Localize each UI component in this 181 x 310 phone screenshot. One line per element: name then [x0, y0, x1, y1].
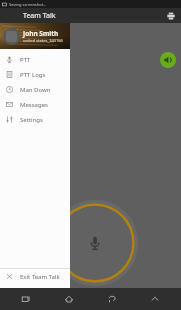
staticText: Team Talk [23, 11, 56, 21]
button[interactable]: Recents [15, 288, 37, 310]
staticText: Settings [20, 116, 43, 124]
button[interactable]: Home [58, 288, 80, 310]
button[interactable]: Messages [0, 97, 70, 112]
staticText: Saving screenshot... [9, 2, 47, 7]
button[interactable]: Man Down [0, 82, 70, 97]
staticText: John Smith [23, 29, 59, 38]
staticText: Exit Team Talk [20, 273, 60, 281]
staticText: PTT [20, 56, 31, 64]
staticText: united states_343166 [23, 38, 63, 43]
button[interactable]: Speaker [160, 52, 176, 68]
button[interactable]: Settings [0, 112, 70, 127]
button[interactable]: PTT [0, 52, 70, 67]
button[interactable]: PTT Logs [0, 67, 70, 82]
button[interactable]: Back [101, 288, 123, 310]
button[interactable]: Groups [164, 9, 177, 22]
staticText: Man Down [20, 86, 51, 94]
button[interactable]: Expand [144, 288, 166, 310]
staticText: PTT Logs [20, 71, 46, 79]
button[interactable]: Exit Team Talk [0, 269, 70, 284]
staticText: Messages [20, 101, 48, 109]
